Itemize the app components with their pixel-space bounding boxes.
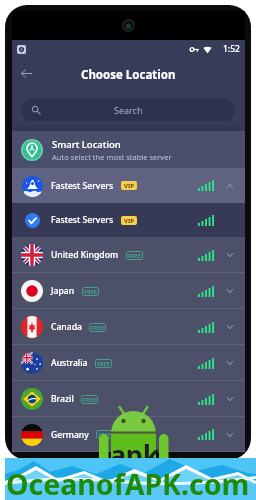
staticText: FREE xyxy=(83,396,96,403)
button[interactable]: Back xyxy=(16,63,37,84)
staticText: Smart Location xyxy=(52,138,121,151)
staticText: Canada xyxy=(51,321,82,333)
button[interactable]: Search xyxy=(21,98,235,121)
staticText: 1:52 xyxy=(223,43,240,55)
button[interactable]: Australia xyxy=(12,345,245,381)
staticText: FREE xyxy=(84,288,97,295)
button[interactable]: Fastest Servers xyxy=(12,203,245,237)
button[interactable]: Fastest Servers xyxy=(12,168,245,203)
button[interactable]: Brazil xyxy=(12,381,245,417)
button[interactable]: Smart Location xyxy=(12,131,245,168)
button[interactable]: Germany xyxy=(12,417,245,452)
staticText: Brazil xyxy=(51,393,74,405)
staticText: Fastest Servers xyxy=(51,180,114,192)
staticText: United Kingdom xyxy=(51,249,119,261)
staticText: Auto select the most stable server xyxy=(52,152,172,162)
staticText: Germany xyxy=(51,429,89,441)
staticText: Choose Location xyxy=(81,67,176,83)
staticText: Japan xyxy=(51,285,75,297)
staticText: FREE xyxy=(98,431,111,438)
staticText: FREE xyxy=(91,324,104,331)
staticText: VIP xyxy=(124,217,134,225)
staticText: Fastest Servers xyxy=(51,214,114,226)
button[interactable]: Canada xyxy=(12,309,245,345)
staticText: OceanofAPK.com xyxy=(6,465,250,500)
staticText: Search xyxy=(114,104,143,116)
staticText: FREE xyxy=(97,360,110,367)
staticText: FREE xyxy=(128,252,141,259)
button[interactable]: United Kingdom xyxy=(12,237,245,273)
button[interactable]: Japan xyxy=(12,273,245,309)
staticText: apk xyxy=(110,436,160,473)
staticText: VIP xyxy=(124,182,134,190)
staticText: Australia xyxy=(51,357,88,369)
